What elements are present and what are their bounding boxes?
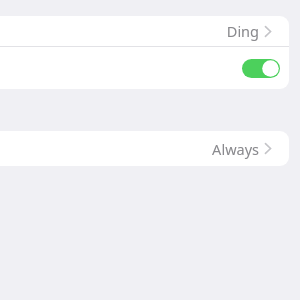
staticText: Ding xyxy=(226,21,259,41)
button[interactable]: Toggle xyxy=(0,47,289,89)
staticText: Always xyxy=(212,139,259,159)
button[interactable]: Always xyxy=(0,131,289,166)
button[interactable]: Ding xyxy=(0,16,289,46)
other: Toggle xyxy=(242,59,280,78)
